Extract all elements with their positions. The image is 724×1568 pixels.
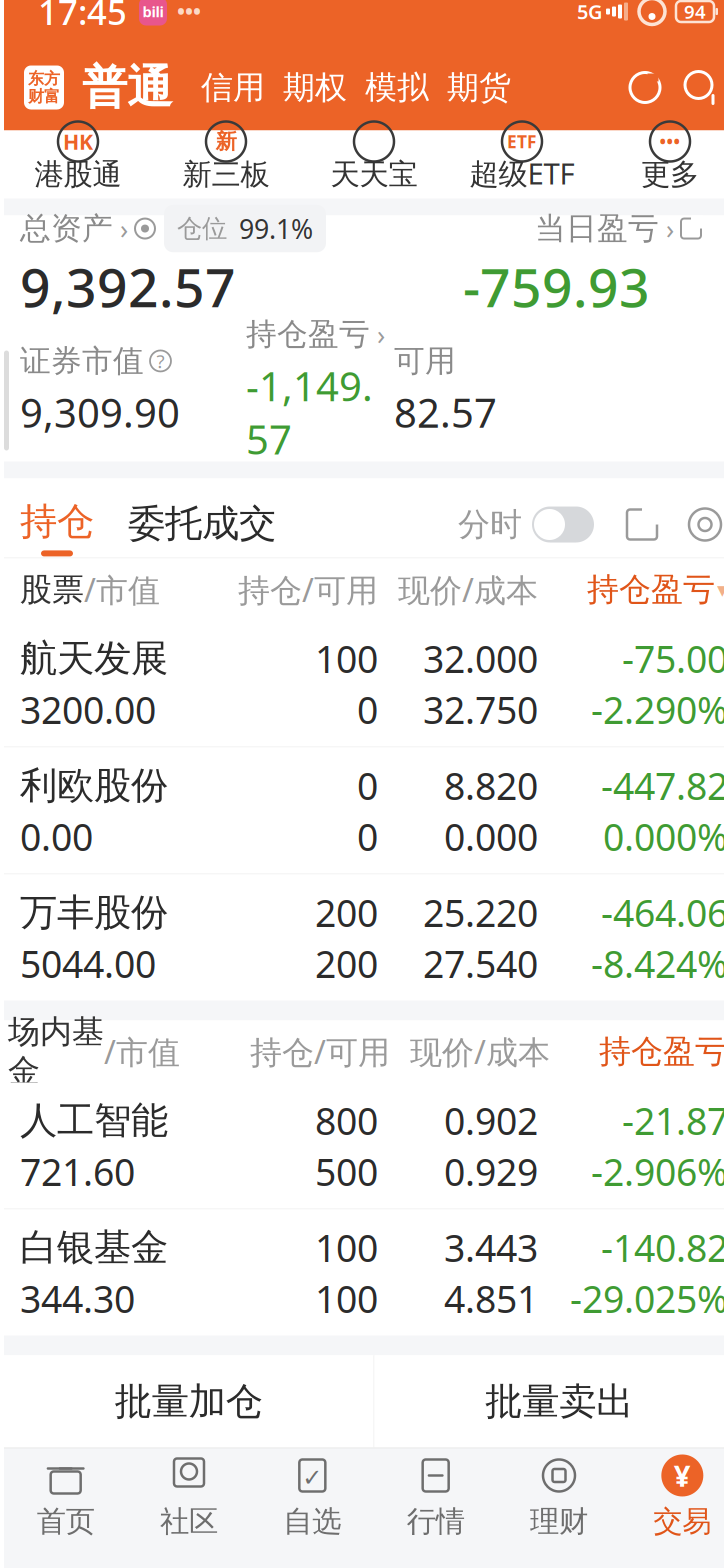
staticText: 交易 bbox=[653, 1503, 711, 1539]
staticText: ? bbox=[156, 348, 164, 373]
staticText: ¥ bbox=[674, 1456, 691, 1495]
staticText: 4.851 bbox=[444, 1274, 538, 1323]
staticText: 新三板 bbox=[182, 156, 269, 192]
button[interactable]: ✓ bbox=[251, 1448, 374, 1544]
staticText: 自选 bbox=[283, 1503, 341, 1539]
staticText: 财富 bbox=[28, 86, 60, 106]
staticText: 持仓/可用 bbox=[238, 568, 378, 611]
button[interactable]: 分时 bbox=[458, 505, 594, 552]
staticText: -140.82 bbox=[601, 1223, 724, 1272]
button[interactable]: 行情 bbox=[374, 1448, 497, 1544]
staticText: HK bbox=[63, 127, 93, 156]
button[interactable]: 委托成交 bbox=[94, 501, 276, 556]
staticText: 200 bbox=[315, 888, 378, 937]
button[interactable]: 新 bbox=[152, 130, 300, 198]
button[interactable]: 社区 bbox=[127, 1448, 251, 1544]
button[interactable]: 航天发展 bbox=[4, 620, 724, 746]
staticText: 当日盈亏 bbox=[535, 210, 659, 247]
staticText: 批量加仓 bbox=[115, 1379, 263, 1424]
staticText: 社区 bbox=[160, 1503, 218, 1539]
button[interactable]: 当日盈亏 bbox=[535, 210, 674, 247]
staticText: ETF bbox=[507, 130, 537, 153]
staticText: ▾ bbox=[717, 577, 724, 602]
button[interactable]: 普通 bbox=[72, 60, 182, 115]
staticText: -75.00 bbox=[622, 634, 724, 683]
button[interactable]: ETF bbox=[448, 130, 596, 198]
staticText: 港股通 bbox=[34, 156, 121, 192]
staticText: 持仓盈亏 bbox=[587, 570, 715, 609]
staticText: /市值 bbox=[84, 568, 160, 611]
staticText: 现价/成本 bbox=[410, 1030, 550, 1073]
staticText: 0.00 bbox=[20, 812, 93, 861]
button[interactable]: 持仓 bbox=[20, 499, 94, 558]
button[interactable]: ¥ bbox=[621, 1448, 724, 1544]
button[interactable]: 设置 bbox=[682, 501, 724, 547]
staticText: 白银基金 bbox=[20, 1225, 168, 1270]
staticText: 82.57 bbox=[394, 386, 497, 439]
staticText: -2.906% bbox=[591, 1147, 724, 1196]
staticText: 场内基金 bbox=[8, 1012, 104, 1091]
staticText: 首页 bbox=[37, 1503, 95, 1539]
staticText: 32.000 bbox=[423, 634, 538, 683]
staticText: 0 bbox=[357, 812, 378, 861]
button[interactable]: ••• bbox=[596, 130, 724, 198]
staticText: 500 bbox=[315, 1147, 378, 1196]
staticText: 3200.00 bbox=[20, 685, 156, 734]
staticText: ✓ bbox=[302, 1464, 322, 1491]
button[interactable]: 刷新 bbox=[622, 64, 668, 110]
staticText: -21.87 bbox=[622, 1096, 724, 1145]
staticText: 批量卖出 bbox=[485, 1379, 633, 1424]
staticText: 0.000% bbox=[603, 812, 724, 861]
staticText: 27.540 bbox=[423, 939, 538, 988]
staticText: 仓位 bbox=[177, 213, 227, 244]
button[interactable]: 显示隐藏金额 bbox=[128, 213, 162, 243]
staticText: 100 bbox=[315, 634, 378, 683]
staticText: 5G bbox=[577, 0, 603, 25]
staticText: 25.220 bbox=[423, 888, 538, 937]
staticText: 持仓/可用 bbox=[250, 1030, 390, 1073]
button[interactable]: 分享 bbox=[674, 213, 708, 243]
staticText: 9,392.57 bbox=[20, 251, 236, 322]
staticText: 721.60 bbox=[20, 1147, 135, 1196]
button[interactable]: 模拟 bbox=[356, 68, 438, 107]
button[interactable]: 批量加仓 bbox=[4, 1355, 373, 1447]
button[interactable]: 期货 bbox=[438, 68, 520, 107]
staticText: -2.290% bbox=[591, 685, 724, 734]
staticText: › bbox=[113, 211, 128, 246]
button[interactable]: 批量卖出 bbox=[374, 1355, 724, 1447]
staticText: 9,309.90 bbox=[20, 386, 180, 439]
button[interactable]: 信用 bbox=[192, 68, 274, 107]
staticText: 理财 bbox=[530, 1503, 588, 1539]
button[interactable]: 搜索 bbox=[678, 64, 724, 110]
staticText: 新 bbox=[215, 128, 236, 155]
staticText: 分时 bbox=[458, 505, 522, 544]
button[interactable]: 人工智能 bbox=[4, 1082, 724, 1208]
staticText: 现价/成本 bbox=[398, 568, 538, 611]
button[interactable]: HK bbox=[4, 130, 152, 198]
button[interactable]: 万丰股份 bbox=[4, 874, 724, 1000]
button[interactable]: 首页 bbox=[4, 1448, 127, 1544]
staticText: 100 bbox=[315, 1274, 378, 1323]
staticText: 人工智能 bbox=[20, 1098, 168, 1143]
staticText: 万丰股份 bbox=[20, 890, 168, 935]
button[interactable]: 持仓盈亏 bbox=[246, 315, 385, 353]
staticText: 信用 bbox=[201, 68, 265, 107]
button[interactable]: 白银基金 bbox=[4, 1209, 724, 1335]
staticText: 行情 bbox=[407, 1503, 465, 1539]
staticText: 超级ETF bbox=[469, 153, 574, 192]
button[interactable]: 理财 bbox=[497, 1448, 621, 1544]
button[interactable]: 导出 bbox=[616, 498, 668, 550]
button[interactable]: 期权 bbox=[274, 68, 356, 107]
staticText: 证券市值 bbox=[20, 342, 144, 380]
button[interactable]: 利欧股份 bbox=[4, 747, 724, 873]
button[interactable]: 天天宝 bbox=[300, 130, 448, 198]
staticText: 3.443 bbox=[444, 1223, 538, 1272]
staticText: 5044.00 bbox=[20, 939, 156, 988]
staticText: 航天发展 bbox=[20, 636, 168, 681]
button[interactable]: 总资产 bbox=[20, 210, 128, 247]
staticText: 94 bbox=[684, 0, 706, 24]
staticText: 普通 bbox=[82, 60, 172, 115]
staticText: 利欧股份 bbox=[20, 763, 168, 808]
staticText: 99.1% bbox=[239, 211, 313, 246]
staticText: -8.424% bbox=[591, 939, 724, 988]
